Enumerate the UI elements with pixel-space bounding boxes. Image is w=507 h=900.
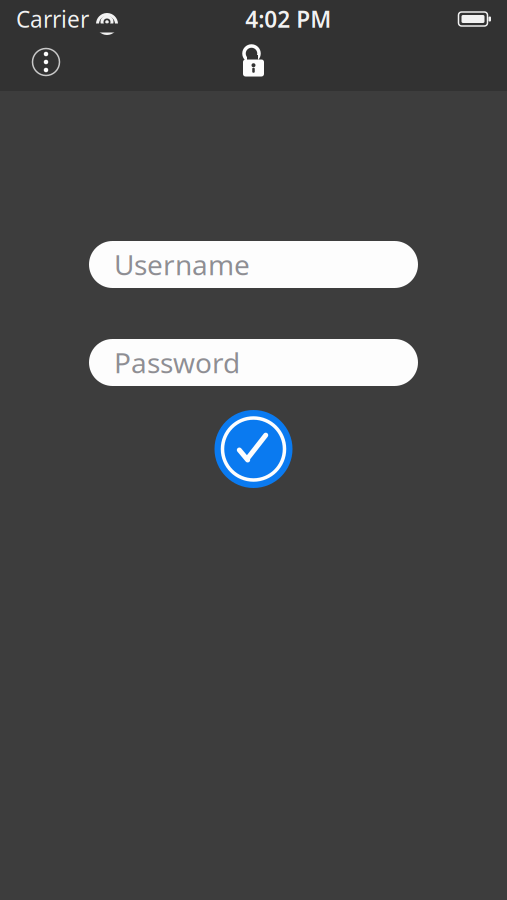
button[interactable]: Password (89, 339, 418, 386)
button[interactable]: Username (89, 241, 418, 288)
staticText: Username (114, 246, 250, 283)
staticText: 4:02 PM (245, 4, 331, 34)
staticText: Password (114, 344, 240, 381)
button[interactable]: Sign in (214, 410, 292, 488)
button[interactable]: Unlock (231, 40, 275, 84)
button[interactable]: More options (24, 40, 68, 84)
staticText: Carrier (16, 4, 89, 34)
